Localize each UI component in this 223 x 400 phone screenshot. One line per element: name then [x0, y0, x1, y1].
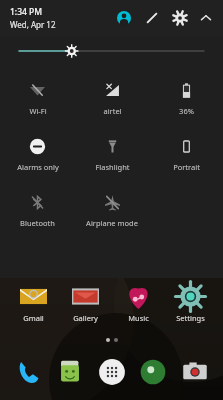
button[interactable]: Camera: [176, 353, 214, 391]
button[interactable]: Phone: [10, 353, 48, 391]
button[interactable]: Apps: [93, 353, 131, 391]
staticText: Wed, Apr 12: [10, 19, 56, 30]
button[interactable]: Account: [115, 9, 133, 27]
button[interactable]: Bluetooth: [0, 182, 75, 238]
staticText: 36%: [179, 106, 194, 116]
staticText: Gmail: [23, 313, 44, 323]
staticText: Wi-Fi: [29, 106, 47, 116]
button[interactable]: Flashlight: [75, 126, 149, 182]
button[interactable]: Portrait: [149, 126, 223, 182]
button[interactable]: Collapse: [197, 9, 215, 27]
staticText: Alarms only: [17, 162, 59, 172]
staticText: Gallery: [73, 313, 98, 323]
staticText: airtel: [103, 106, 122, 116]
button[interactable]: Gmail: [8, 281, 58, 325]
button[interactable]: Gallery: [60, 281, 110, 325]
button[interactable]: Airplane mode: [75, 182, 149, 238]
staticText: Flashlight: [95, 162, 130, 172]
button[interactable]: Brightness: [0, 36, 223, 66]
button[interactable]: 36%: [149, 70, 223, 126]
button[interactable]: Alarms only: [0, 126, 75, 182]
button[interactable]: airtel: [75, 70, 149, 126]
button[interactable]: Wi-Fi: [0, 70, 75, 126]
button[interactable]: 1:34 PM: [10, 6, 56, 30]
staticText: Portrait: [173, 162, 200, 172]
button[interactable]: Edit: [143, 9, 161, 27]
button[interactable]: Messages: [51, 353, 89, 391]
staticText: Bluetooth: [20, 218, 55, 228]
button[interactable]: Settings: [171, 9, 189, 27]
staticText: Settings: [176, 313, 205, 323]
staticText: 1:34 PM: [10, 6, 43, 18]
button[interactable]: Settings: [165, 281, 215, 325]
button[interactable]: Music: [113, 281, 163, 325]
staticText: Music: [128, 313, 149, 323]
staticText: Airplane mode: [86, 218, 138, 228]
button[interactable]: WhatsApp: [134, 353, 172, 391]
